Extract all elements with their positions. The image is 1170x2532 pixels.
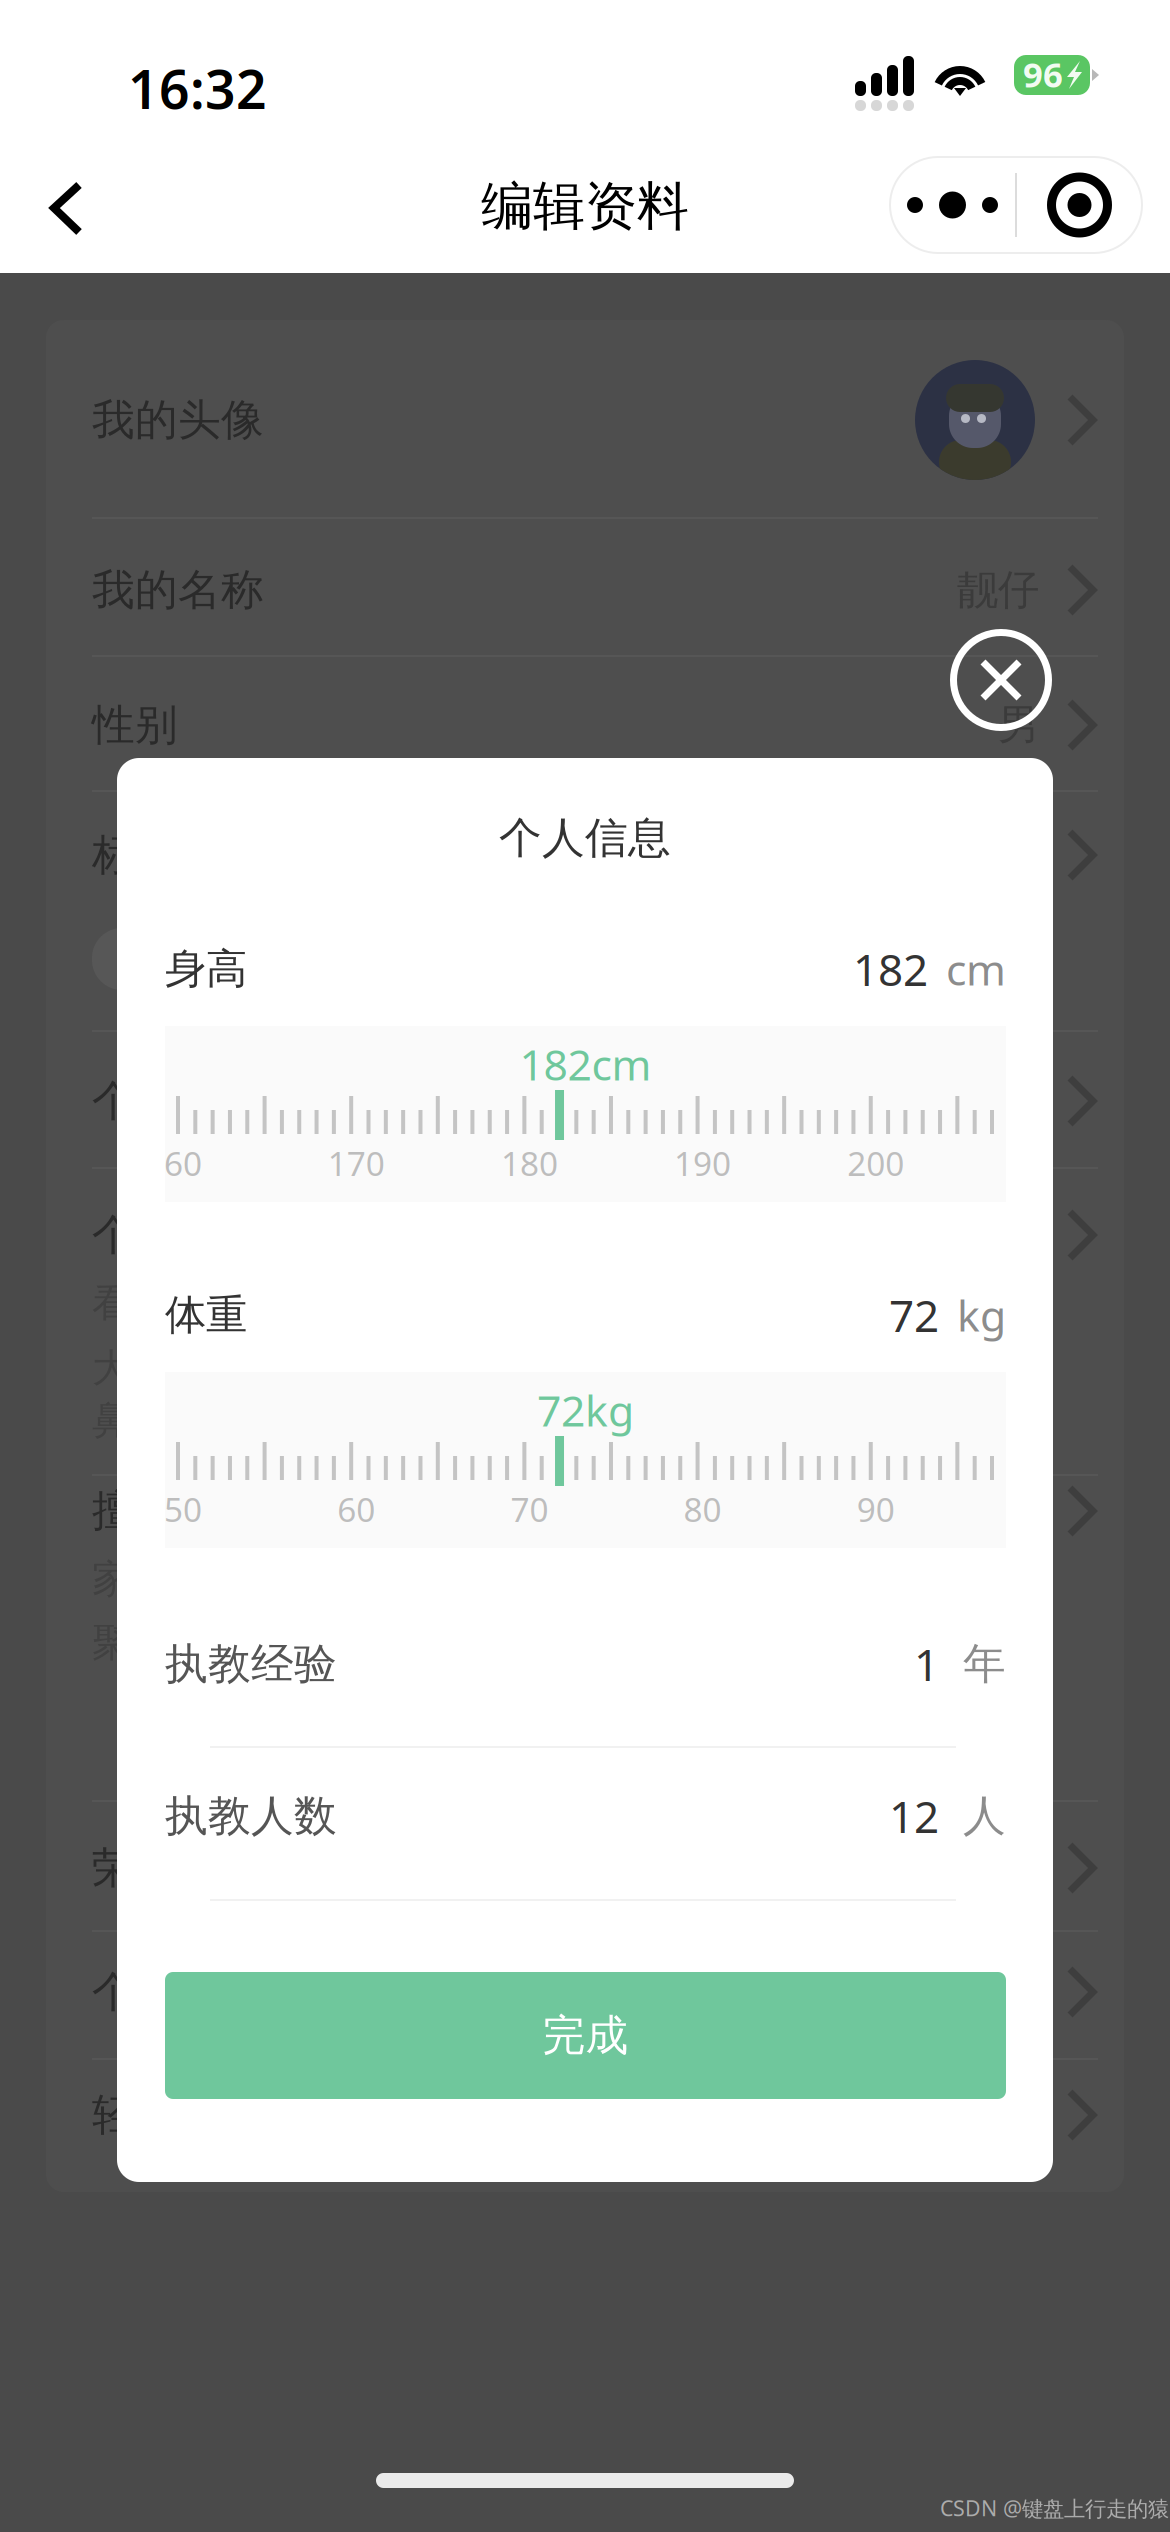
staticText: 执教经验 (165, 1638, 337, 1690)
staticText: 182 (853, 940, 928, 998)
staticText: 80 (684, 1487, 722, 1531)
staticText: 男 (998, 700, 1039, 750)
staticText: 72kg (537, 1382, 634, 1438)
staticText: 标签 (92, 829, 178, 881)
staticText: 擅长项目 (92, 1485, 264, 1537)
staticText: 50 (164, 1487, 202, 1531)
staticText: 60 (164, 1141, 202, 1185)
staticText: 人 (963, 1790, 1006, 1842)
staticText: 鼻祖级别的教练员 (92, 1396, 404, 1444)
staticText: 12 (889, 1787, 939, 1845)
staticText: 个人经历 (92, 1209, 264, 1261)
staticText: 个人信息 (499, 812, 671, 864)
staticText: 60 (337, 1487, 375, 1531)
staticText: 72 (889, 1286, 939, 1344)
button[interactable]: More options (890, 157, 1015, 253)
button[interactable]: Close (951, 630, 1051, 730)
staticText: 看大鼻子教练打球 (92, 1279, 404, 1327)
staticText: 靓仔 (957, 565, 1039, 615)
staticText: 编辑资料 (481, 175, 689, 238)
staticText: 200 (847, 1141, 904, 1185)
staticText: 90 (857, 1487, 895, 1531)
staticText: 执教人数 (165, 1790, 337, 1842)
staticText: 180 (501, 1141, 558, 1185)
staticText: 182cm (519, 1036, 651, 1092)
staticText: 身高 (165, 944, 247, 994)
staticText: 性别 (92, 699, 178, 751)
staticText: kg (957, 1287, 1006, 1343)
staticText: 个人视频 (92, 1966, 264, 2018)
staticText: 16:32 (128, 53, 267, 124)
staticText: CSDN @键盘上行走的猿 (940, 2494, 1169, 2522)
staticText: 体重 (165, 1290, 247, 1340)
staticText: 聚焦体能与爆发力 (92, 1619, 404, 1667)
staticText: 我的名称 (92, 564, 264, 616)
button[interactable]: Close mini program (1017, 157, 1142, 253)
staticText: 轻松一刻 (92, 2089, 264, 2141)
staticText: 1 (914, 1635, 939, 1693)
button[interactable]: 完成 (165, 1972, 1006, 2099)
staticText: 大学生运动会冠军 (92, 1344, 404, 1392)
staticText: 70 (510, 1487, 548, 1531)
staticText: 我的头像 (92, 394, 264, 446)
staticText: 个人介绍 (92, 1075, 264, 1127)
staticText: 170 (328, 1141, 385, 1185)
staticText: 完成 (542, 2009, 628, 2062)
staticText: 190 (674, 1141, 731, 1185)
staticText: 家庭健身私教课程 (92, 1555, 404, 1603)
staticText: 96 (1023, 51, 1063, 97)
button[interactable]: Back (12, 140, 132, 273)
staticText: 荣誉证书 (92, 1842, 264, 1894)
staticText: 年 (963, 1638, 1006, 1690)
staticText: cm (946, 941, 1006, 997)
